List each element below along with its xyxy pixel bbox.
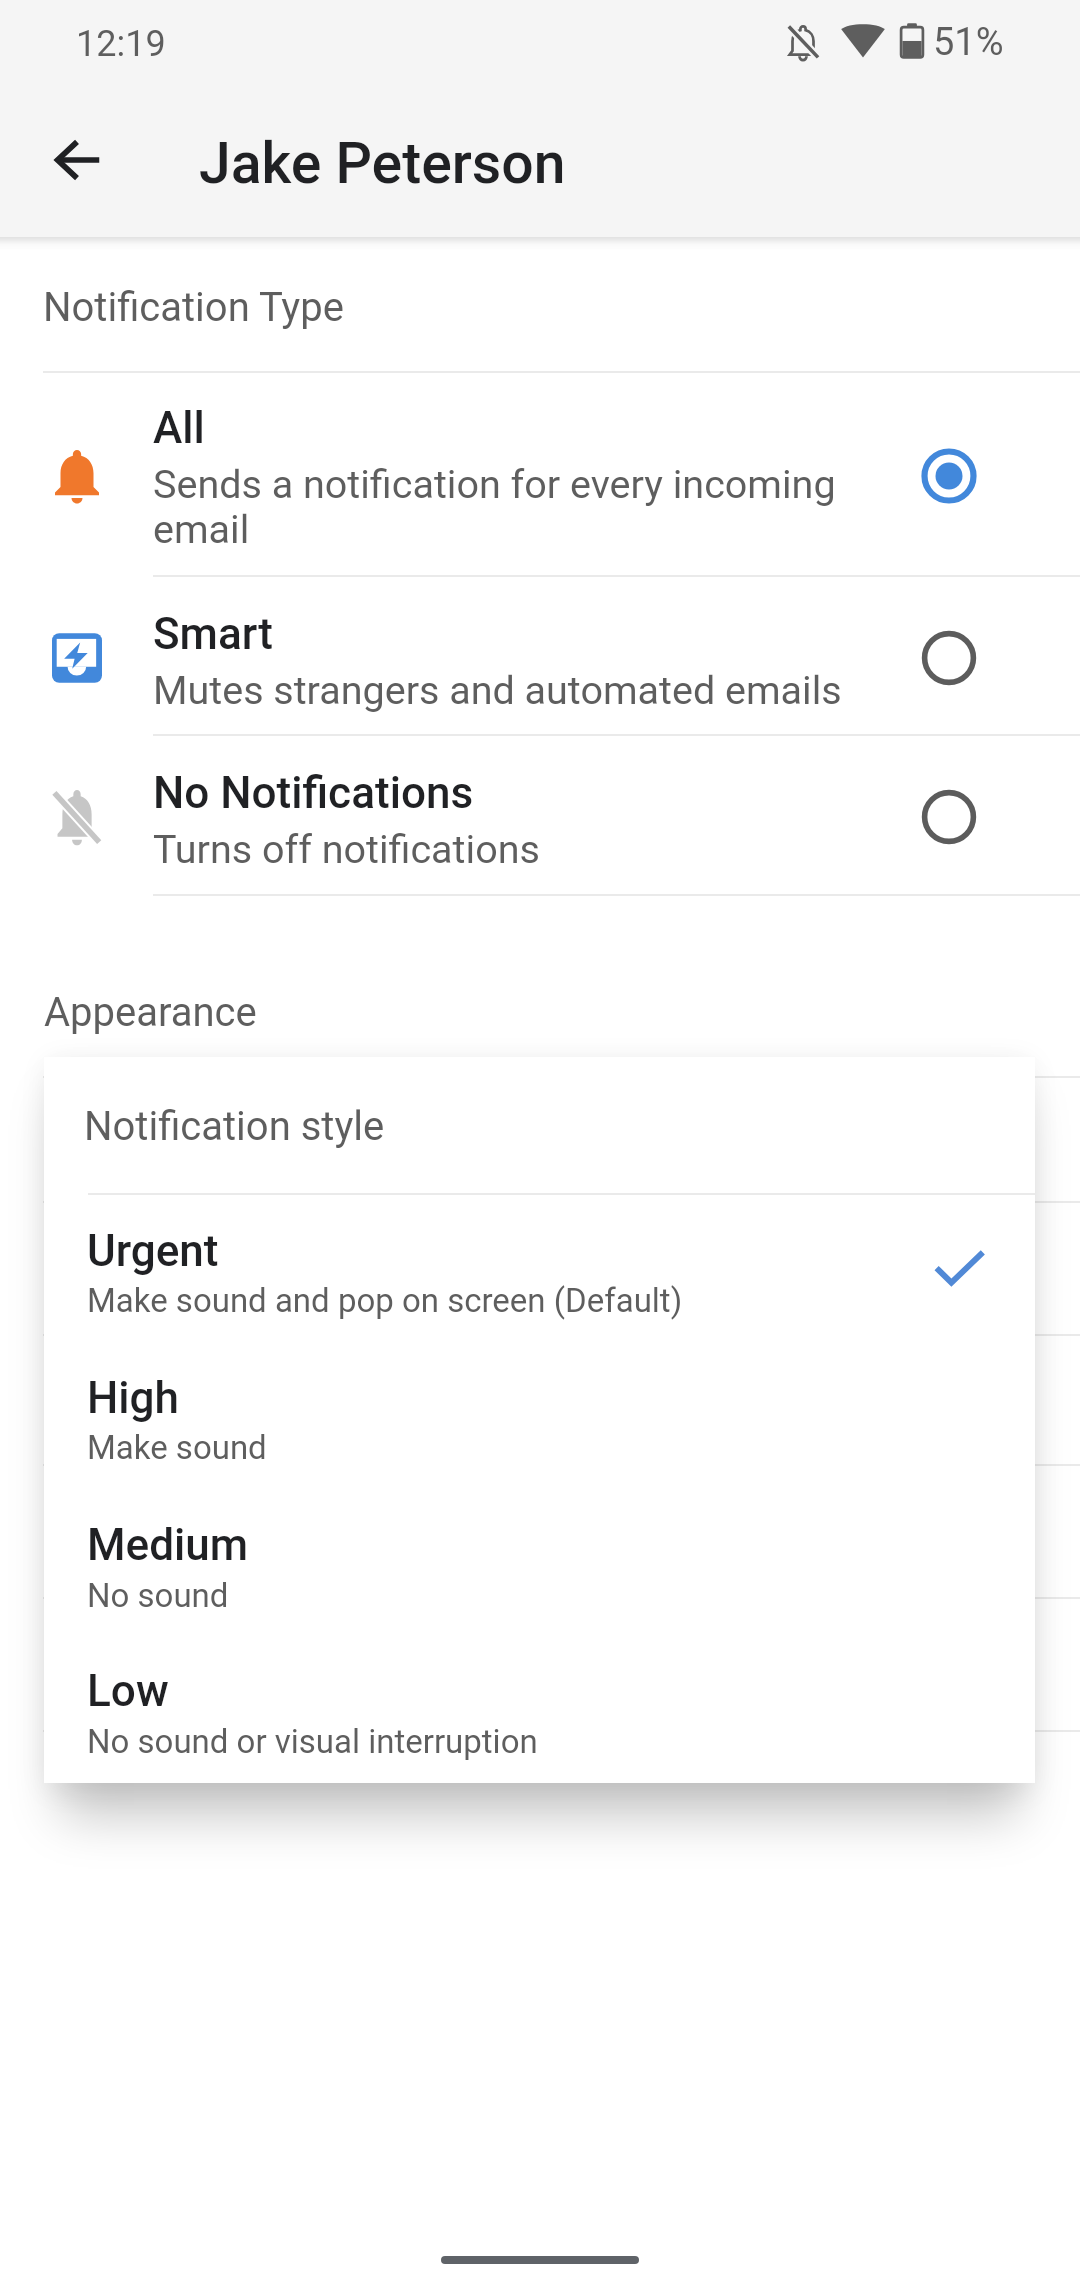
staticText: Mutes strangers and automated emails [153, 667, 842, 713]
staticText: Jake Peterson [199, 130, 566, 197]
staticText: Notification style [84, 1103, 385, 1150]
button[interactable] [44, 1641, 1035, 1788]
staticText: 51% [933, 20, 1004, 65]
staticText: Make sound [87, 1428, 267, 1467]
staticText: Smart [153, 608, 273, 660]
staticText: Low [87, 1665, 169, 1717]
staticText: No sound or visual interruption [87, 1722, 538, 1761]
staticText: Medium [87, 1519, 249, 1571]
staticText: No sound [87, 1576, 229, 1615]
button[interactable]: No Notifications [0, 734, 1080, 894]
staticText: High [87, 1372, 179, 1424]
staticText: All [153, 402, 205, 454]
button[interactable] [44, 1201, 1035, 1348]
staticText: Make sound and pop on screen (Default) [87, 1281, 683, 1320]
button[interactable]: All [0, 371, 1080, 575]
staticText: 12:19 [76, 23, 166, 65]
staticText: Sends a notification for every incoming … [153, 461, 836, 553]
staticText: Notification Type [43, 284, 344, 331]
staticText: Turns off notifications [153, 826, 540, 872]
staticText: Urgent [87, 1225, 219, 1277]
button[interactable]: Back [29, 112, 125, 208]
staticText: Appearance [44, 989, 257, 1036]
staticText: No Notifications [153, 767, 474, 819]
button[interactable]: Smart [0, 575, 1080, 734]
button[interactable] [44, 1348, 1035, 1495]
button[interactable] [44, 1495, 1035, 1642]
